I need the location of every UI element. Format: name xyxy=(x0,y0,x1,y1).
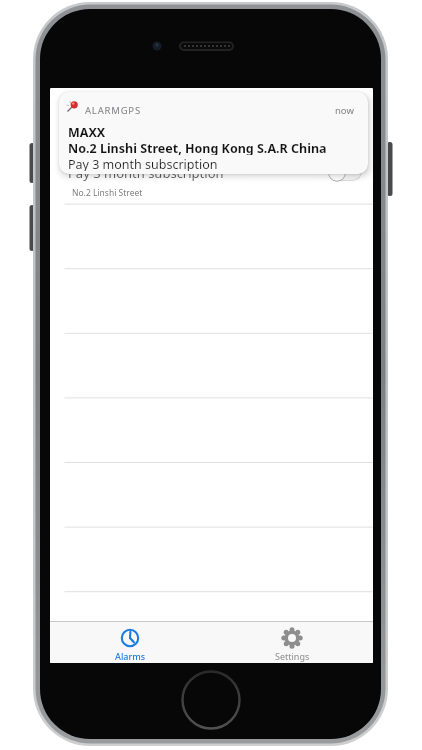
staticText: now xyxy=(335,104,354,117)
button[interactable] xyxy=(330,162,362,181)
staticText: No.2 Linshi Street xyxy=(72,187,143,198)
staticText: Pay 3 month subscription xyxy=(68,156,218,171)
staticText: MAXX xyxy=(68,124,106,139)
button[interactable]: Pay 3 month subscription xyxy=(50,143,373,203)
staticText: Alarms xyxy=(115,650,146,662)
button[interactable]: Alarms xyxy=(100,623,160,663)
staticText: Pay 3 month subscription xyxy=(68,164,224,181)
staticText: Settings xyxy=(275,650,310,662)
staticText: No.2 Linshi Street, Hong Kong S.A.R Chin… xyxy=(68,140,327,155)
staticText: ALARMGPS xyxy=(85,104,141,117)
button[interactable]: ALARMGPS xyxy=(59,92,368,174)
button[interactable]: Settings xyxy=(262,623,322,663)
